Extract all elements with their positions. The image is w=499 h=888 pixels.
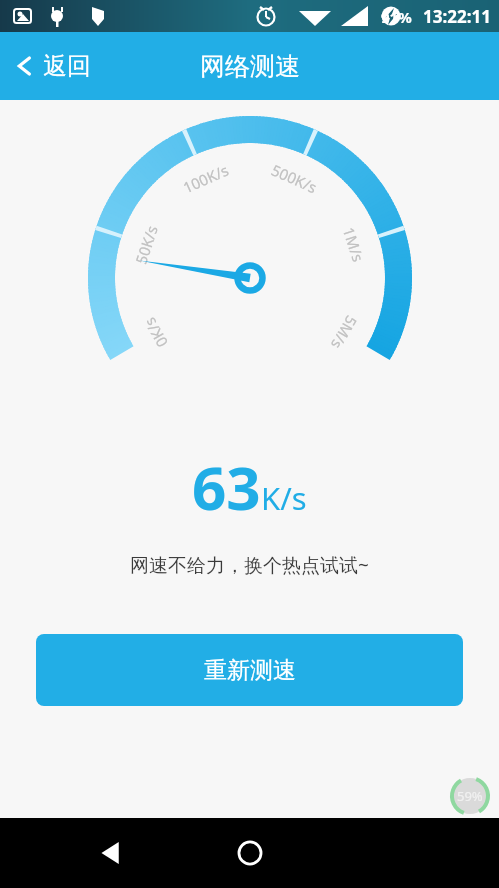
staticText: 网速不给力，换个热点试试~ [0, 552, 499, 578]
staticText: 13:22:11 [423, 5, 491, 28]
staticText: 重新测速 [204, 656, 296, 685]
staticText: 返回 [43, 51, 91, 81]
staticText: K/s [261, 477, 307, 519]
staticText: 网络测速 [200, 51, 300, 82]
staticText: 91% [381, 7, 412, 27]
button[interactable]: 重新测速 [36, 634, 463, 706]
staticText: 63 [192, 446, 261, 528]
button[interactable]: Back [88, 829, 136, 877]
staticText: 59% [457, 787, 483, 805]
button[interactable]: Home [226, 829, 274, 877]
button[interactable]: 返回 [0, 32, 107, 100]
button[interactable]: Memory usage 59 percent [450, 776, 490, 816]
